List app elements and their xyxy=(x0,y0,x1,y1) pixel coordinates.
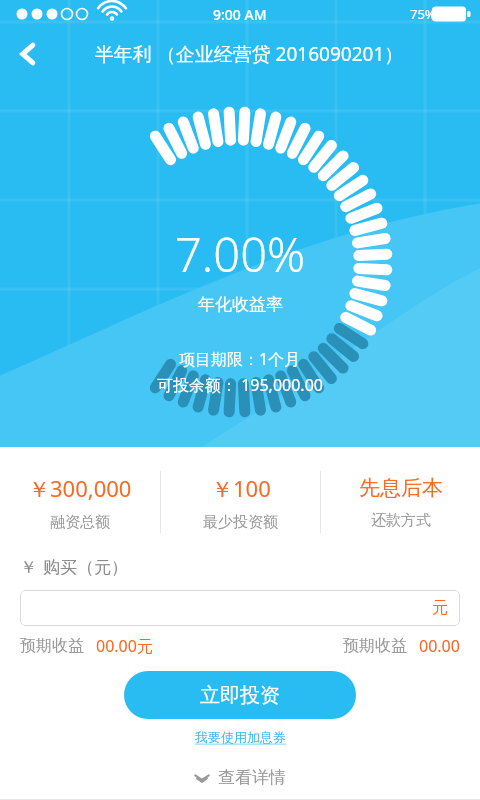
staticText: 年化收益率 xyxy=(198,294,283,315)
staticText: 元 xyxy=(432,598,448,618)
staticText: 可投余额： 195,000.00 xyxy=(157,374,323,396)
button[interactable]: ￥100 xyxy=(161,473,320,532)
staticText: 00.00 xyxy=(419,635,460,657)
staticText: 还款方式 xyxy=(371,511,431,530)
staticText: ￥ xyxy=(20,557,37,578)
button[interactable]: ￥300,000 xyxy=(0,473,160,532)
staticText: 7.00% xyxy=(175,222,306,286)
staticText: ￥100 xyxy=(211,473,271,503)
button[interactable]: 查看详情 xyxy=(184,763,296,792)
staticText: 预期收益 xyxy=(343,636,407,656)
button[interactable]: 我要使用加息券 xyxy=(187,727,294,747)
staticText: 00.00元 xyxy=(96,635,153,657)
staticText: 半年利 （企业经营贷 2016090201） xyxy=(42,41,456,67)
staticText: 融资总额 xyxy=(50,513,110,532)
button[interactable]: Back xyxy=(0,28,56,80)
staticText: 最少投资额 xyxy=(203,513,278,532)
staticText: ￥300,000 xyxy=(28,473,132,503)
staticText: 先息后本 xyxy=(359,475,443,501)
staticText: 查看详情 xyxy=(218,767,286,788)
staticText: 预期收益 xyxy=(20,636,84,656)
staticText: 我要使用加息券 xyxy=(195,729,286,745)
staticText: 项目期限：1个月 xyxy=(179,348,301,370)
button[interactable]: 立即投资 xyxy=(124,671,356,719)
staticText: 购买（元） xyxy=(43,557,128,578)
button[interactable]: 元 xyxy=(20,590,460,626)
button[interactable]: 先息后本 xyxy=(321,475,480,530)
staticText: 立即投资 xyxy=(200,683,280,708)
staticText: 9:00 AM xyxy=(213,5,267,24)
staticText: 75% xyxy=(410,5,436,23)
